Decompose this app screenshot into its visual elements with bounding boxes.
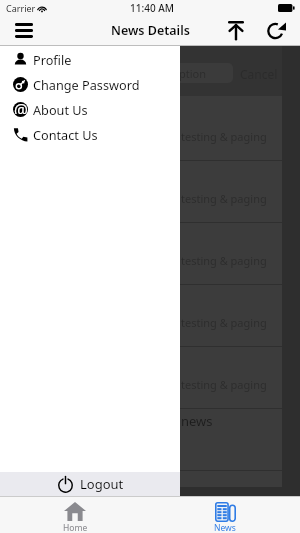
- button[interactable]: testing & paging: [0, 161, 282, 223]
- button[interactable]: Open navigation menu: [4, 18, 44, 43]
- staticText: Change Password: [33, 76, 140, 93]
- button[interactable]: testing & paging: [0, 347, 282, 409]
- button[interactable]: @: [0, 97, 180, 122]
- button[interactable]: Share: [220, 18, 252, 43]
- button[interactable]: testing & paging: [0, 99, 282, 161]
- button[interactable]: ption: [8, 63, 233, 83]
- button[interactable]: News: [150, 497, 300, 533]
- staticText: Logout: [80, 475, 124, 493]
- staticText: @: [14, 99, 28, 114]
- button[interactable]: Logout: [0, 472, 180, 496]
- staticText: testing & paging: [181, 129, 267, 144]
- staticText: testing & paging: [181, 253, 267, 268]
- staticText: 11:40 AM: [130, 1, 174, 15]
- staticText: testing & paging: [181, 377, 267, 392]
- button[interactable]: testing & paging: [0, 223, 282, 285]
- staticText: News Details: [111, 22, 190, 39]
- button[interactable]: news: [0, 409, 282, 471]
- button[interactable]: testing & paging: [0, 285, 282, 347]
- staticText: ption: [179, 66, 207, 81]
- button[interactable]: Home: [0, 497, 150, 533]
- staticText: news: [181, 412, 213, 430]
- staticText: testing & paging: [181, 191, 267, 206]
- staticText: Contact Us: [33, 126, 98, 143]
- staticText: Profile: [33, 51, 72, 68]
- staticText: testing & paging: [181, 315, 267, 330]
- button[interactable]: Refresh: [260, 18, 292, 43]
- staticText: Home: [63, 522, 88, 533]
- staticText: Carrier: [6, 2, 36, 14]
- button[interactable]: Contact Us: [0, 122, 180, 147]
- button[interactable]: Profile: [0, 47, 180, 72]
- button[interactable]: Change Password: [0, 72, 180, 97]
- staticText: News: [214, 522, 236, 533]
- staticText: About Us: [33, 101, 88, 118]
